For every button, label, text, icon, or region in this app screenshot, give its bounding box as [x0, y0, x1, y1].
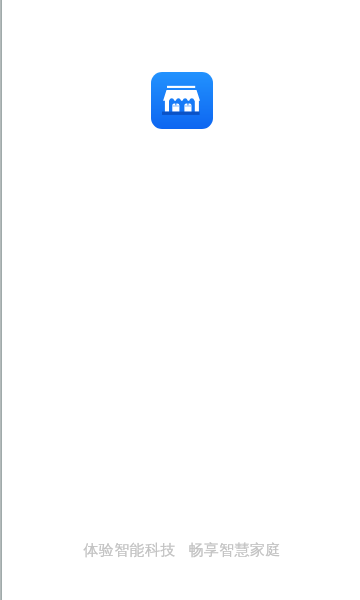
staticText: 体验智能科技 畅享智慧家庭 — [2, 539, 360, 559]
button[interactable]: App icon — [151, 72, 213, 129]
